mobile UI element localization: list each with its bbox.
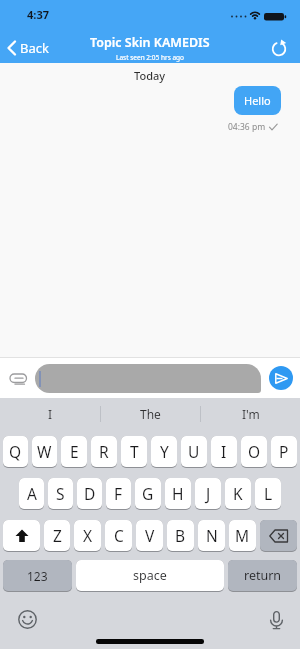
button[interactable]: W: [32, 436, 57, 467]
button[interactable]: X: [74, 520, 101, 551]
button[interactable]: [18, 610, 37, 629]
button[interactable]: Z: [44, 520, 70, 551]
button[interactable]: U: [181, 436, 207, 467]
button[interactable]: Back: [7, 39, 49, 57]
button[interactable]: G: [135, 478, 161, 509]
button[interactable]: Q: [3, 436, 28, 467]
button[interactable]: [35, 364, 261, 393]
staticText: space: [133, 567, 167, 584]
staticText: O: [248, 441, 261, 462]
staticText: Y: [160, 441, 169, 462]
button[interactable]: H: [165, 478, 191, 509]
button[interactable]: K: [225, 478, 251, 509]
staticText: I'm: [242, 406, 260, 422]
button[interactable]: B: [167, 520, 194, 551]
staticText: H: [172, 483, 184, 504]
staticText: I: [48, 406, 53, 422]
staticText: C: [114, 525, 124, 546]
button[interactable]: F: [106, 478, 131, 509]
button[interactable]: O: [241, 436, 267, 467]
staticText: Today: [134, 68, 166, 83]
button[interactable]: [9, 369, 29, 387]
staticText: P: [279, 441, 289, 462]
staticText: T: [130, 441, 139, 462]
staticText: S: [56, 483, 65, 504]
button[interactable]: V: [136, 520, 163, 551]
button[interactable]: space: [76, 560, 224, 591]
button[interactable]: [260, 520, 297, 551]
staticText: Hello: [244, 93, 271, 108]
button[interactable]: E: [61, 436, 87, 467]
staticText: G: [142, 483, 154, 504]
button[interactable]: S: [48, 478, 73, 509]
staticText: D: [84, 483, 96, 504]
button[interactable]: C: [105, 520, 132, 551]
staticText: A: [27, 483, 37, 504]
staticText: K: [233, 483, 243, 504]
staticText: V: [145, 525, 155, 546]
staticText: W: [37, 441, 52, 462]
button[interactable]: J: [195, 478, 221, 509]
staticText: F: [114, 483, 123, 504]
staticText: return: [244, 567, 282, 584]
button[interactable]: N: [198, 520, 225, 551]
staticText: Q: [9, 441, 22, 462]
staticText: N: [206, 525, 218, 546]
button[interactable]: M: [229, 520, 256, 551]
button[interactable]: A: [19, 478, 44, 509]
staticText: X: [83, 525, 93, 546]
button[interactable]: L: [255, 478, 281, 509]
button[interactable]: I: [0, 398, 100, 430]
button[interactable]: [270, 39, 288, 57]
staticText: 123: [27, 568, 48, 584]
staticText: Back: [20, 39, 49, 57]
button[interactable]: [269, 611, 284, 630]
staticText: I: [221, 441, 227, 462]
button[interactable]: [3, 520, 40, 551]
button[interactable]: Y: [151, 436, 177, 467]
staticText: L: [264, 483, 273, 504]
button[interactable]: return: [228, 560, 297, 591]
staticText: B: [175, 525, 186, 546]
staticText: U: [188, 441, 200, 462]
staticText: 4:37: [27, 7, 49, 22]
staticText: Topic Skin KAMEDIS: [90, 34, 210, 51]
staticText: M: [235, 525, 250, 546]
button[interactable]: D: [77, 478, 102, 509]
button[interactable]: 123: [3, 560, 72, 591]
button[interactable]: P: [271, 436, 297, 467]
button[interactable]: The: [101, 398, 200, 430]
staticText: Z: [53, 525, 62, 546]
button[interactable]: T: [121, 436, 147, 467]
button[interactable]: Hello: [234, 86, 281, 115]
staticText: J: [206, 483, 211, 504]
staticText: E: [70, 441, 79, 462]
staticText: Last seen 2:05 hrs ago: [116, 53, 185, 62]
button[interactable]: I: [211, 436, 237, 467]
staticText: R: [99, 441, 109, 462]
staticText: The: [140, 406, 161, 422]
button[interactable]: [269, 366, 293, 390]
staticText: 04:36 pm: [228, 121, 266, 133]
button[interactable]: I'm: [201, 398, 300, 430]
button[interactable]: R: [91, 436, 117, 467]
